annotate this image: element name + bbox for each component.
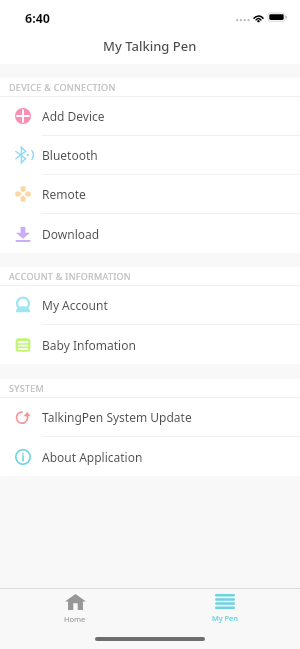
staticText: Remote [42, 186, 86, 202]
staticText: Add Device [42, 108, 105, 124]
staticText: 6:40 [25, 10, 50, 27]
staticText: SYSTEM [9, 382, 44, 394]
button[interactable]: About Application [0, 437, 300, 476]
button[interactable]: My Account [0, 286, 300, 325]
staticText: TalkingPen System Update [42, 409, 192, 425]
button[interactable]: Home [0, 589, 150, 636]
staticText: My Talking Pen [103, 37, 197, 55]
button[interactable]: Add Device [0, 97, 300, 136]
staticText: Home [64, 614, 86, 624]
staticText: Baby Infomation [42, 337, 136, 353]
button[interactable]: TalkingPen System Update [0, 398, 300, 437]
staticText: Download [42, 226, 100, 242]
staticText: Bluetooth [42, 147, 98, 163]
staticText: ACCOUNT & INFORMATION [9, 270, 132, 282]
staticText: About Application [42, 449, 143, 465]
button[interactable]: Remote [0, 175, 300, 214]
staticText: DEVICE & CONNECTION [9, 81, 116, 93]
button[interactable]: Bluetooth [0, 136, 300, 175]
button[interactable]: My Pen [150, 589, 300, 636]
button[interactable]: Baby Infomation [0, 325, 300, 364]
staticText: My Account [42, 297, 108, 313]
staticText: My Pen [212, 613, 238, 623]
button[interactable]: Download [0, 214, 300, 253]
